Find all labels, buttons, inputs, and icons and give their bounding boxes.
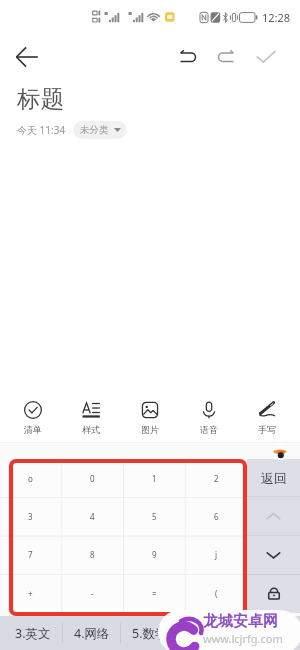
button[interactable]: 3 (0, 497, 61, 535)
button[interactable]: Done (245, 36, 287, 78)
button[interactable]: Lock (247, 575, 300, 613)
staticText: = (152, 588, 157, 599)
staticText: 语音 (200, 424, 218, 435)
staticText: ( (215, 588, 218, 599)
button[interactable]: Back (9, 39, 45, 75)
staticText: 3.英文 (15, 625, 51, 642)
button[interactable]: 图片 (124, 399, 176, 437)
button[interactable]: 9 (123, 535, 185, 574)
button[interactable]: = (123, 574, 185, 613)
button[interactable]: 5 (123, 497, 185, 535)
staticText: 清单 (24, 424, 42, 435)
staticText: 9 (152, 549, 157, 560)
staticText: 5.数学 (132, 625, 168, 642)
staticText: 4 (90, 511, 95, 522)
staticText: 5 (152, 511, 157, 522)
button[interactable]: + (0, 574, 61, 613)
button[interactable]: 6 (185, 497, 247, 535)
staticText: 1 (152, 473, 157, 484)
button[interactable]: 4.网络 (63, 616, 120, 650)
button[interactable]: Sticker (272, 444, 288, 460)
button[interactable]: 语音 (183, 399, 235, 437)
button[interactable]: Undo (169, 38, 207, 76)
button[interactable]: ( (185, 574, 247, 613)
staticText: 8 (90, 549, 95, 560)
button[interactable]: 样式 (65, 399, 117, 437)
staticText: 图片 (141, 424, 159, 435)
staticText: 12:28 (262, 10, 291, 25)
staticText: 3 (28, 511, 33, 522)
button[interactable]: 返回 (247, 459, 300, 496)
button[interactable]: Redo (207, 38, 245, 76)
button[interactable]: 4 (61, 497, 123, 535)
button[interactable]: 0 (61, 459, 123, 497)
button[interactable]: 未分类 (73, 121, 127, 139)
button[interactable]: 1 (123, 459, 185, 497)
staticText: 7 (28, 549, 33, 560)
button[interactable]: Page down (247, 536, 300, 574)
staticText: 样式 (82, 424, 100, 435)
button[interactable]: Page up (247, 497, 300, 535)
staticText: j (215, 549, 218, 560)
staticText: 返回 (261, 470, 287, 486)
button[interactable]: 2 (185, 459, 247, 497)
staticText: 未分类 (80, 124, 109, 136)
button[interactable]: 手写 (241, 399, 293, 437)
staticText: 标题 (17, 84, 64, 114)
button[interactable]: 3.英文 (4, 616, 62, 650)
button[interactable]: j (185, 535, 247, 574)
button[interactable]: 8 (61, 535, 123, 574)
staticText: 今天 11:34 (17, 123, 66, 137)
button[interactable]: 7 (0, 535, 61, 574)
staticText: 0 (90, 473, 95, 484)
staticText: 龙城安卓网 (203, 612, 278, 631)
staticText: + (28, 588, 33, 599)
staticText: www.lcjrfg.com (203, 631, 283, 646)
staticText: 2 (214, 473, 219, 484)
button[interactable]: o (0, 459, 61, 497)
button[interactable]: 5.数学 (121, 616, 178, 650)
button[interactable]: 清单 (7, 399, 59, 437)
staticText: 手写 (258, 424, 276, 435)
staticText: - (91, 588, 94, 599)
button[interactable]: - (61, 574, 123, 613)
staticText: 6 (214, 511, 219, 522)
staticText: o (28, 473, 33, 484)
staticText: 4.网络 (74, 625, 110, 642)
